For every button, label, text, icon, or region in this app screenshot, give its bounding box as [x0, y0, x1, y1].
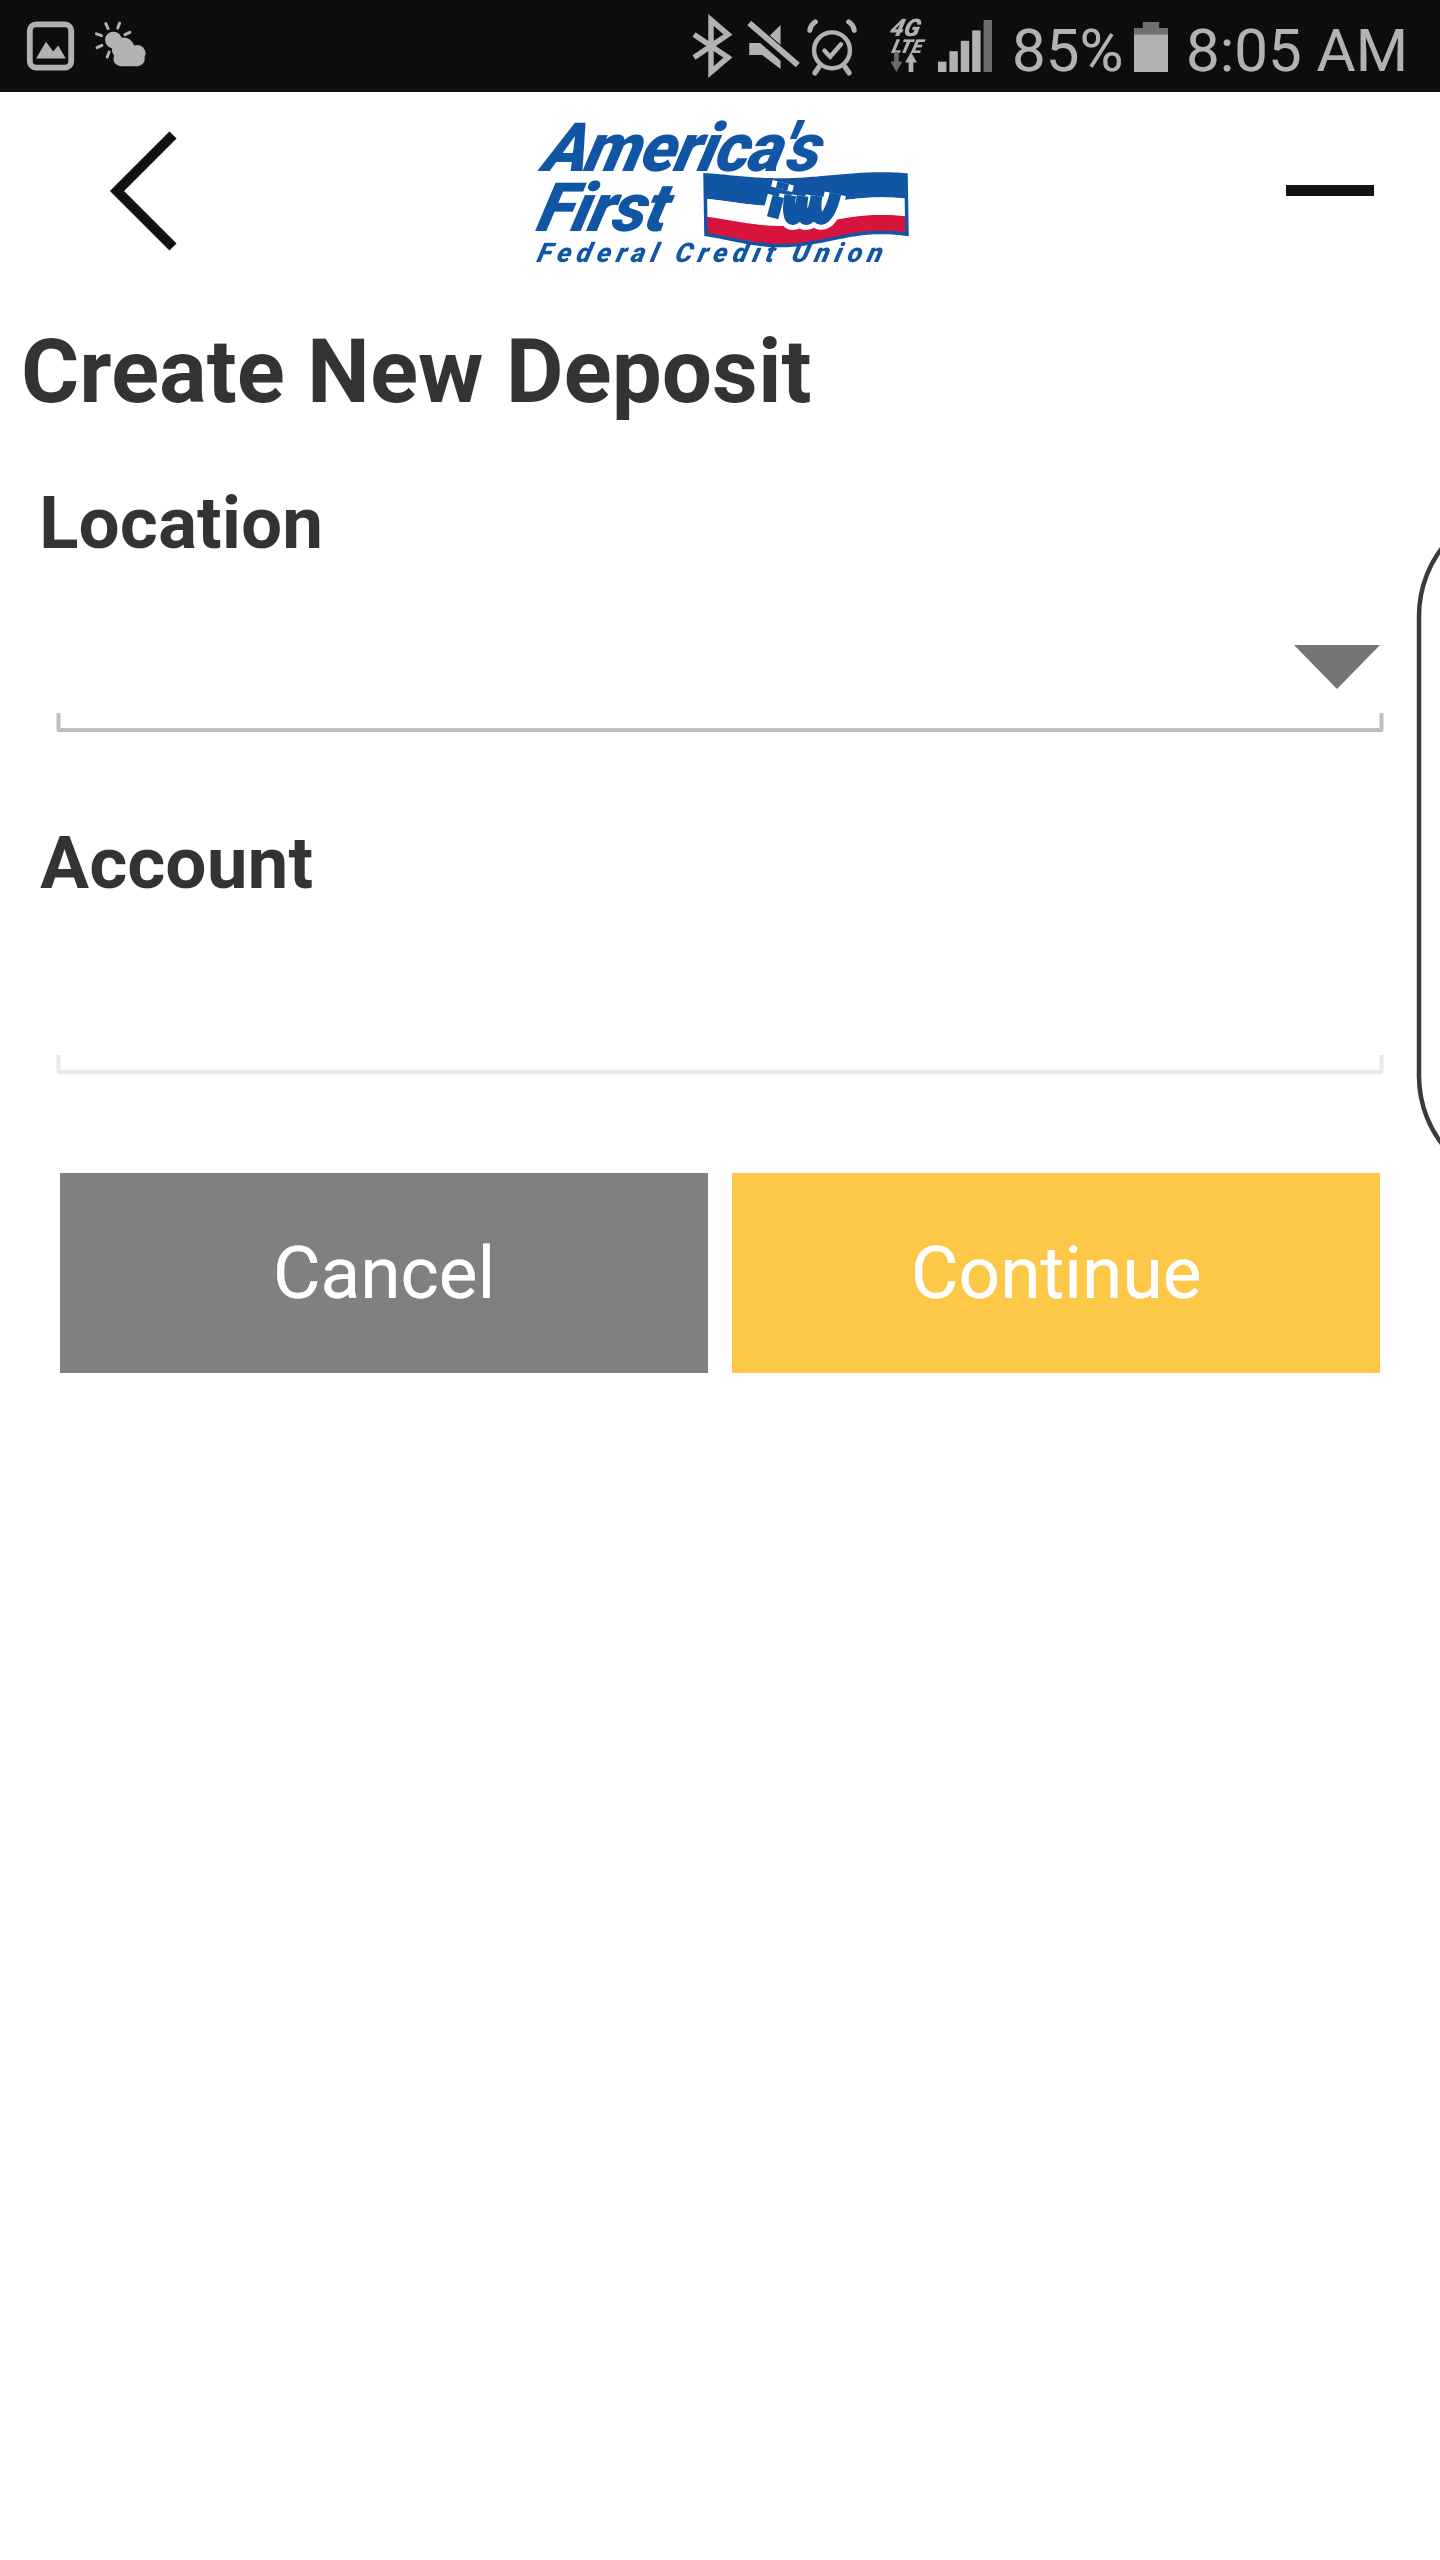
staticText: America's: [541, 108, 817, 188]
staticText: Cancel: [273, 1230, 496, 1316]
button[interactable]: Back: [55, 103, 235, 279]
staticText: Location: [39, 480, 324, 566]
button[interactable]: Continue: [732, 1173, 1380, 1373]
staticText: 8:05 AM: [1186, 15, 1409, 85]
staticText: 4G: [889, 14, 919, 42]
staticText: Federal Credit Union: [536, 237, 887, 269]
button[interactable]: Select account: [0, 912, 1440, 1092]
staticText: Account: [40, 820, 314, 906]
staticText: Create New Deposit: [21, 319, 812, 423]
staticText: 85%: [1012, 15, 1124, 85]
staticText: Continue: [911, 1230, 1202, 1316]
button[interactable]: Minimize: [1255, 130, 1405, 250]
button[interactable]: Select location: [0, 570, 1440, 750]
button[interactable]: Cancel: [60, 1173, 708, 1373]
staticText: First: [535, 168, 664, 248]
staticText: LTE: [891, 35, 922, 57]
